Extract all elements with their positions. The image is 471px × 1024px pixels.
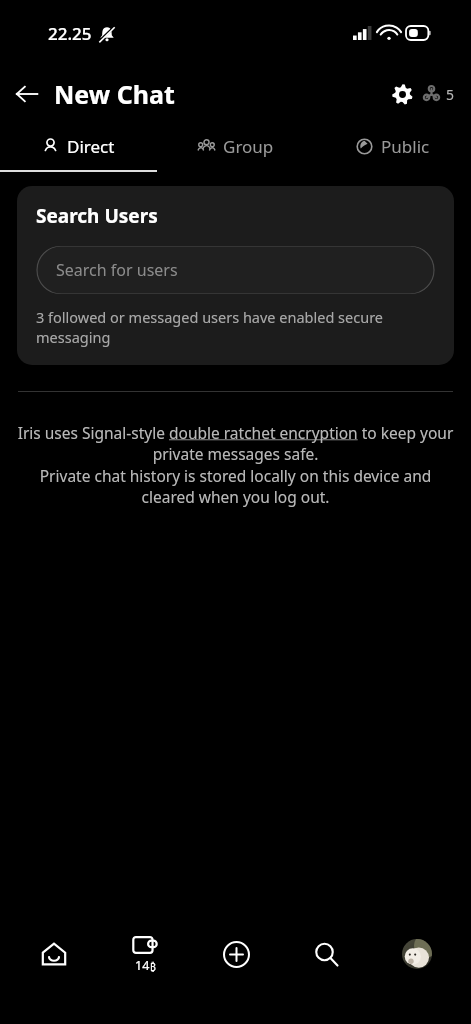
staticText: New Chat	[54, 77, 175, 111]
button[interactable]: Settings	[384, 76, 420, 112]
staticText: 14	[135, 957, 150, 974]
staticText: Search for users	[56, 259, 178, 281]
button[interactable]: Home	[17, 923, 91, 985]
staticText: 3 followed or messaged users have enable…	[36, 307, 435, 348]
button[interactable]: Wallet 14 sats	[108, 923, 182, 985]
staticText: Iris uses Signal-style double ratchet en…	[14, 422, 457, 465]
button[interactable]: Search	[289, 923, 363, 985]
button[interactable]: Back	[0, 67, 54, 121]
staticText: Private chat history is stored locally o…	[14, 465, 457, 508]
button[interactable]: Direct	[0, 122, 157, 170]
staticText: 5	[446, 85, 455, 104]
staticText: ₿	[150, 960, 156, 974]
staticText: 22.25	[48, 22, 92, 45]
staticText: Search Users	[36, 203, 158, 229]
button[interactable]: New post	[199, 923, 273, 985]
button[interactable]: Search for users	[36, 246, 435, 294]
button[interactable]: Public	[314, 122, 471, 170]
button[interactable]: Relays	[420, 85, 457, 104]
staticText: Public	[381, 135, 430, 158]
staticText: Group	[223, 135, 274, 158]
button[interactable]: Group	[157, 122, 314, 170]
button[interactable]: Profile	[380, 923, 454, 985]
staticText: Direct	[67, 135, 115, 158]
